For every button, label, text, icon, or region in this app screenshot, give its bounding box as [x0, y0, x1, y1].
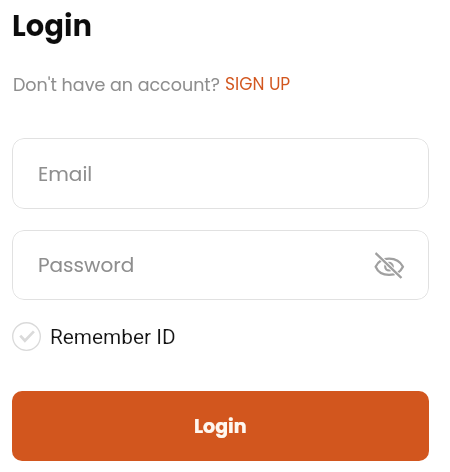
staticText: SIGN UP — [225, 72, 291, 96]
staticText: Login — [194, 413, 247, 440]
button[interactable]: Password — [12, 230, 429, 300]
button[interactable]: Login — [12, 391, 429, 461]
button[interactable]: Remember ID — [12, 322, 176, 351]
button[interactable]: SIGN UP — [225, 72, 291, 96]
staticText: Don't have an account? — [13, 73, 225, 98]
button[interactable]: Show password — [371, 247, 407, 283]
staticText: Email — [38, 160, 93, 188]
staticText: Password — [38, 251, 135, 279]
button[interactable]: Email — [12, 138, 429, 209]
staticText: Login — [12, 6, 93, 47]
staticText: Remember ID — [50, 325, 176, 349]
